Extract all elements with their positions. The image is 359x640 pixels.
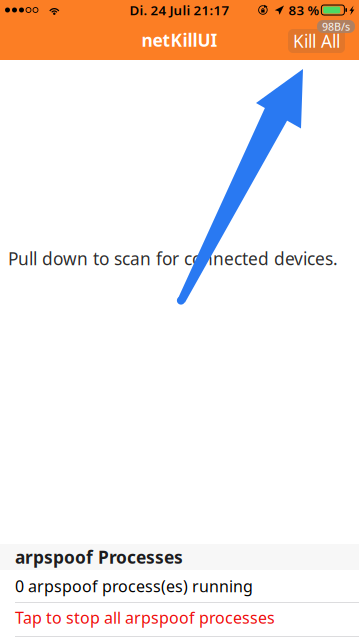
staticText: Kill All [293,29,340,52]
staticText: Di. 24 Juli 21:17 [129,1,229,19]
button[interactable]: Tap to stop all arpspoof processes [0,603,359,636]
staticText: Tap to stop all arpspoof processes [15,607,275,628]
staticText: 98B/s [322,19,350,34]
staticText: 83 % [288,1,319,19]
staticText: Pull down to scan for connected devices. [8,247,338,270]
staticText: netKillUI [141,28,217,51]
staticText: arpspoof Processes [15,545,183,568]
staticText: 0 arpspoof process(es) running [15,575,253,597]
button[interactable]: 0 arpspoof process(es) running [0,570,359,602]
button[interactable]: Kill All [288,29,345,53]
